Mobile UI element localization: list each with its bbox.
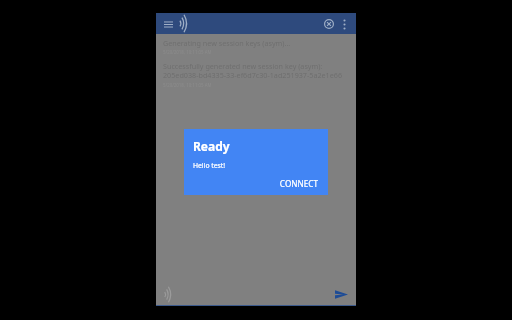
button[interactable]: Generating new session keys (asym)... — [163, 38, 349, 55]
button[interactable]: CONNECT — [277, 177, 320, 190]
staticText: Ready — [193, 138, 230, 154]
staticText: Hello test! — [193, 161, 226, 170]
button[interactable]: Disconnect — [321, 16, 337, 32]
button[interactable]: Send — [332, 285, 350, 303]
staticText: Generating new session keys (asym)... — [163, 38, 291, 48]
staticText: CONNECT — [279, 178, 318, 189]
button[interactable]: More options — [337, 17, 351, 31]
button[interactable]: Successfully generated new session key (… — [163, 61, 349, 88]
staticText: Successfully generated new session key (… — [163, 61, 349, 81]
button[interactable]: Open navigation drawer — [161, 17, 175, 31]
